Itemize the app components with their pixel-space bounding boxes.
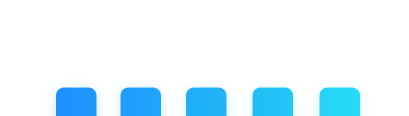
button[interactable]: Colour swatch 2	[120, 87, 161, 116]
button[interactable]: Colour swatch 3	[186, 87, 226, 116]
button[interactable]: Colour swatch 1	[56, 87, 96, 116]
button[interactable]: Colour swatch 4	[252, 87, 293, 116]
button[interactable]: Colour swatch 5	[319, 87, 360, 116]
